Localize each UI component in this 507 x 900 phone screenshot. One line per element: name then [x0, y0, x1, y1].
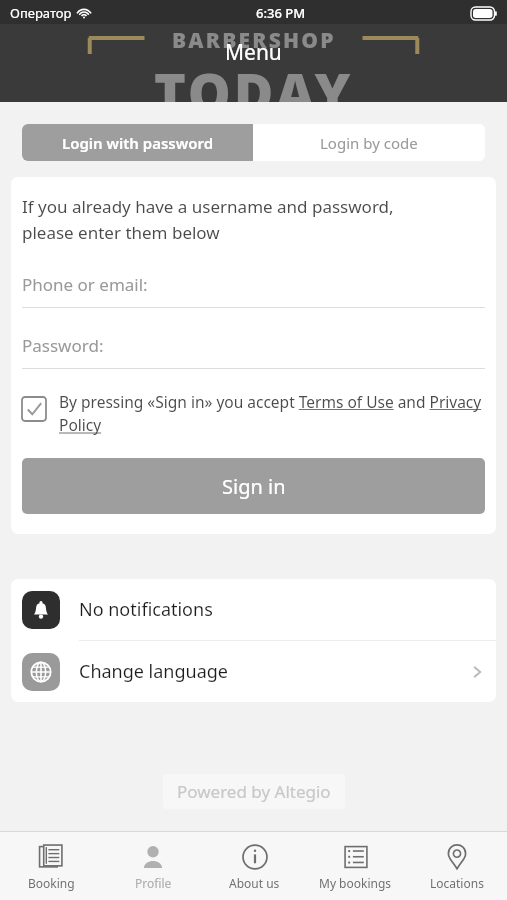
staticText: Profile	[135, 875, 172, 891]
staticText: Phone or email:	[22, 273, 148, 296]
staticText: Оператор	[10, 4, 72, 22]
staticText: About us	[229, 875, 280, 891]
staticText: Locations	[430, 875, 484, 891]
staticText: Booking	[28, 875, 75, 891]
button[interactable]: Booking	[0, 832, 102, 900]
staticText: Change language	[79, 659, 229, 684]
staticText: By pressing «Sign in» you accept Terms o…	[59, 391, 485, 436]
button[interactable]: Change language	[11, 641, 496, 702]
staticText: 6:36 PM	[256, 4, 306, 22]
other: Notifications	[22, 591, 60, 629]
button[interactable]: Sign in	[22, 458, 485, 514]
staticText: If you already have a username and passw…	[22, 195, 394, 244]
staticText: Login by code	[320, 133, 418, 153]
button[interactable]: Login by code	[253, 124, 485, 161]
staticText: Powered by Altegio	[177, 780, 331, 803]
other: Accept terms	[22, 397, 46, 421]
button[interactable]: Profile	[102, 832, 204, 900]
staticText: No notifications	[79, 597, 213, 622]
button[interactable]: Login with password	[22, 124, 253, 161]
button[interactable]: Powered by Altegio	[163, 774, 345, 809]
staticText: Login with password	[62, 133, 214, 153]
staticText: BARBERSHOP	[172, 26, 336, 55]
button[interactable]: About us	[204, 832, 305, 900]
button[interactable]: Locations	[406, 832, 507, 900]
staticText: My bookings	[319, 875, 392, 891]
staticText: TODAY	[154, 55, 354, 102]
button[interactable]: Accept terms	[22, 391, 485, 436]
staticText: Menu	[225, 38, 282, 67]
button[interactable]: Notifications	[11, 579, 496, 640]
button[interactable]: My bookings	[305, 832, 406, 900]
other: Change language	[22, 653, 60, 691]
staticText: Sign in	[222, 473, 286, 500]
staticText: Password:	[22, 334, 104, 357]
